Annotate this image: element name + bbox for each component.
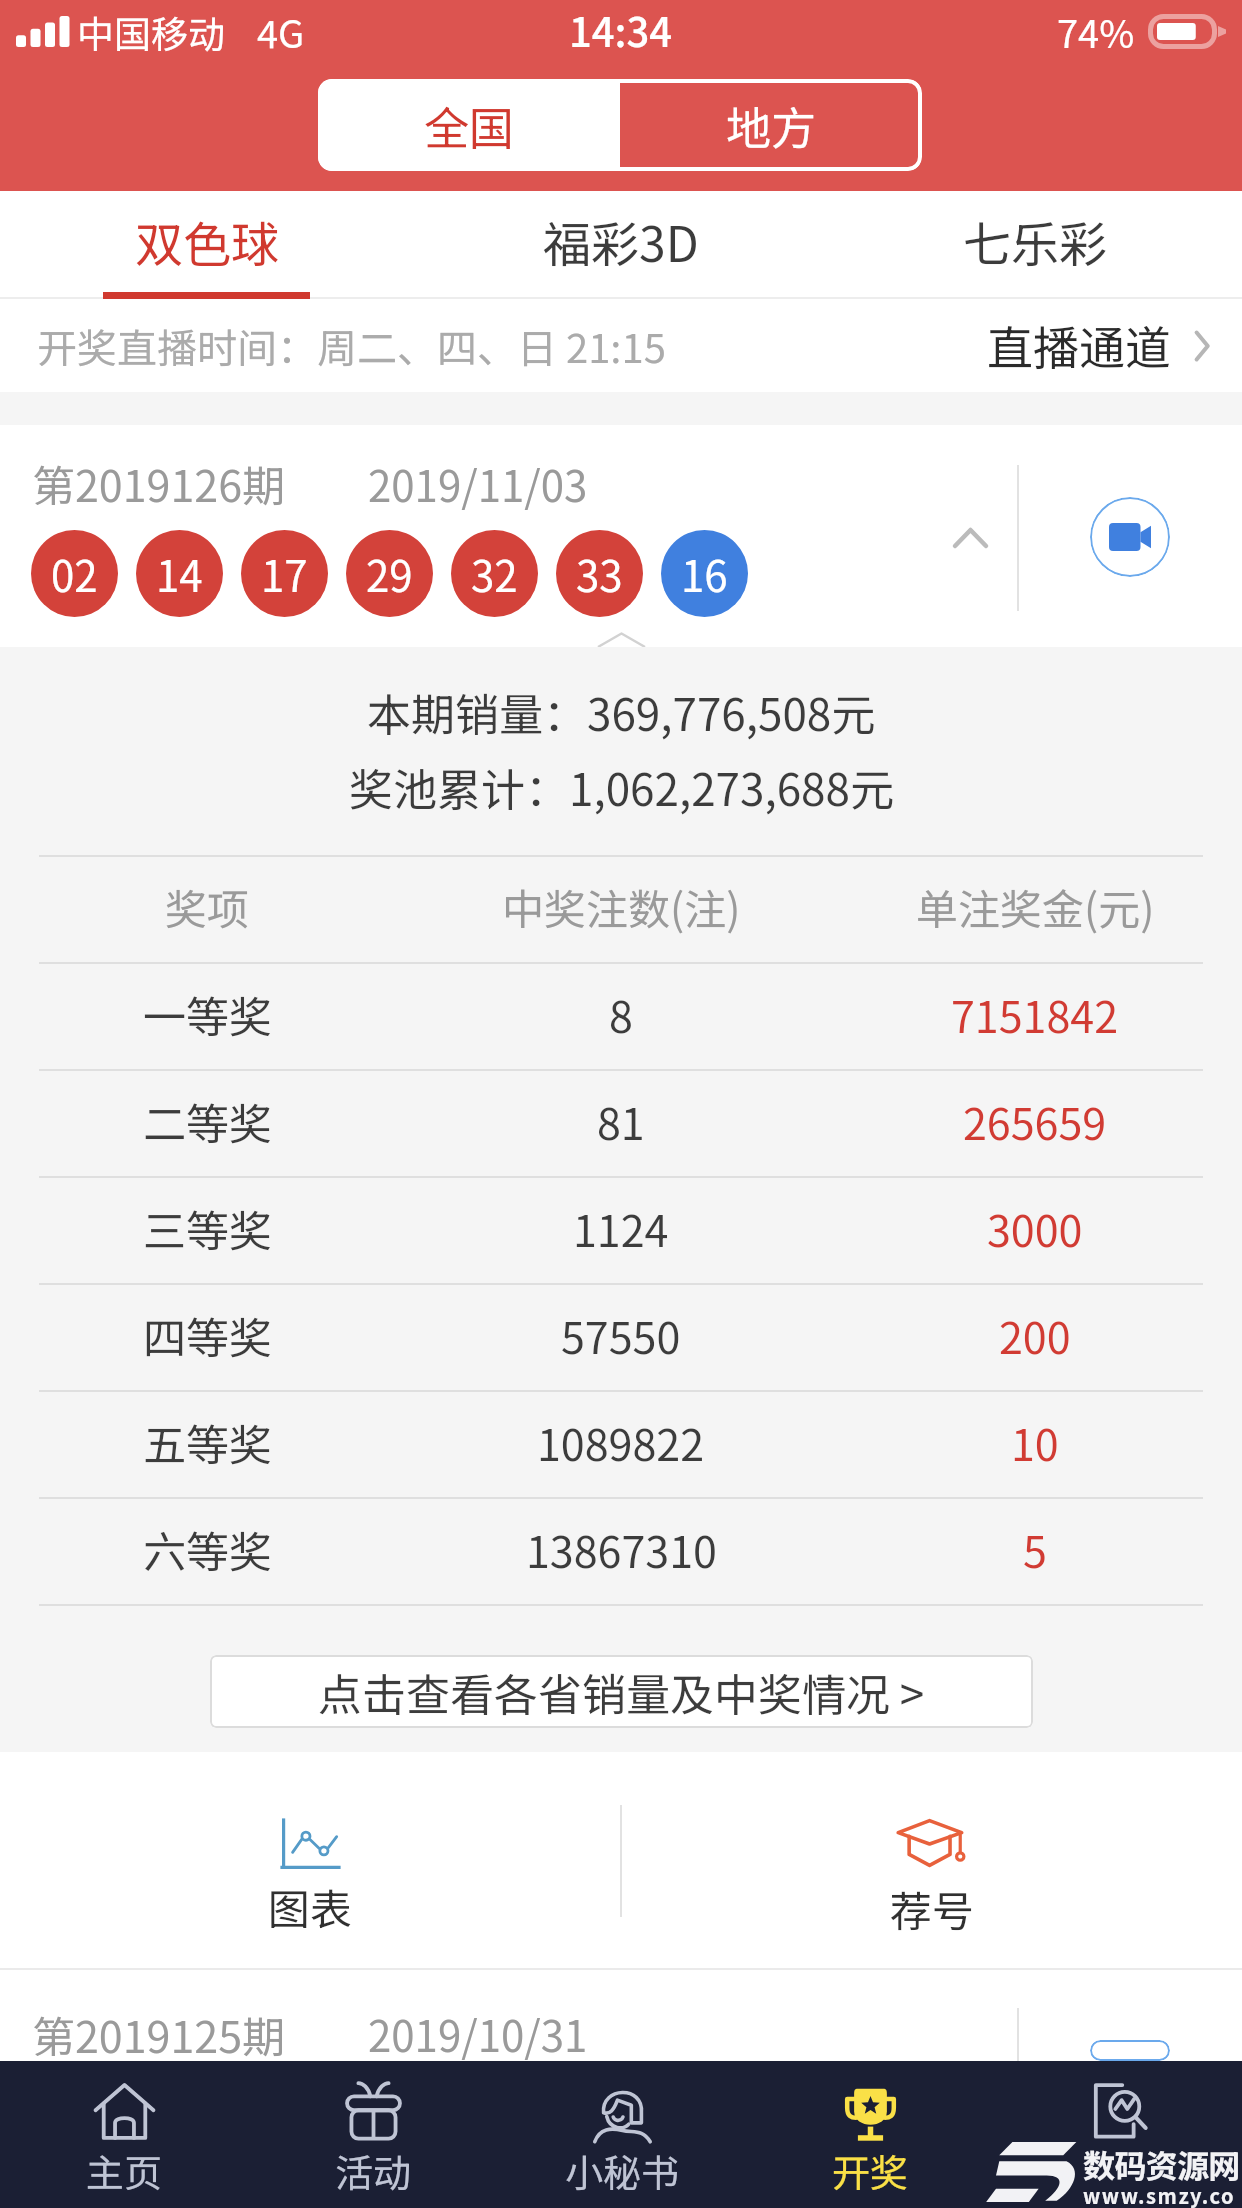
staticText: 第2019125期 — [32, 2003, 286, 2061]
staticText: 200 — [999, 1304, 1071, 1366]
staticText: 四等奖 — [143, 1304, 272, 1366]
button[interactable]: 活动 — [249, 2061, 498, 2208]
button[interactable]: 地方 — [620, 79, 922, 171]
staticText: 开奖 — [832, 2143, 909, 2198]
staticText: 14:34 — [569, 1, 673, 59]
staticText: 第2019126期 — [32, 452, 286, 514]
button[interactable]: 双色球 — [0, 191, 414, 299]
button[interactable]: 开奖 — [746, 2061, 994, 2208]
staticText: 74% — [1057, 4, 1135, 59]
button[interactable]: 小秘书 — [498, 2061, 746, 2208]
staticText: 32 — [471, 543, 518, 604]
staticText: 三等奖 — [143, 1197, 272, 1259]
staticText: 六等奖 — [143, 1518, 272, 1580]
staticText: 265659 — [963, 1090, 1107, 1152]
staticText: 点击查看各省销量及中奖情况 > — [318, 1660, 925, 1724]
staticText: 4G — [257, 4, 305, 59]
button[interactable]: Search — [994, 2061, 1242, 2208]
button[interactable]: 荐号 — [622, 1752, 1242, 1970]
button[interactable]: Collapse — [924, 492, 1016, 584]
staticText: 1089822 — [537, 1411, 705, 1473]
staticText: 全国 — [424, 93, 515, 158]
button[interactable]: 点击查看各省销量及中奖情况 > — [210, 1655, 1033, 1728]
staticText: 一等奖 — [143, 983, 272, 1045]
button[interactable]: 全国 — [318, 79, 620, 171]
staticText: 33 — [576, 543, 623, 604]
staticText: 奖池累计：1,062,273,688元 — [349, 755, 894, 818]
button[interactable]: 福彩3D — [414, 191, 828, 299]
staticText: 荐号 — [890, 1878, 975, 1939]
staticText: 活动 — [335, 2143, 412, 2198]
staticText: 直播通道 — [987, 312, 1171, 379]
staticText: 13867310 — [526, 1518, 717, 1580]
staticText: 主页 — [86, 2143, 163, 2198]
staticText: 17 — [261, 543, 308, 604]
staticText: 8 — [609, 983, 633, 1045]
staticText: 福彩3D — [543, 206, 699, 276]
button[interactable]: 图表 — [0, 1752, 620, 1970]
staticText: 中国移动 — [77, 5, 225, 59]
staticText: 1124 — [573, 1197, 669, 1259]
button[interactable]: 七乐彩 — [828, 191, 1242, 299]
staticText: 7151842 — [951, 983, 1119, 1045]
staticText: 中奖注数(注) — [502, 876, 741, 937]
staticText: 图表 — [268, 1876, 353, 1937]
staticText: 29 — [366, 543, 413, 604]
staticText: 14 — [156, 543, 203, 604]
staticText: 10 — [1011, 1411, 1059, 1473]
staticText: 57550 — [561, 1304, 681, 1366]
staticText: 2019/11/03 — [368, 453, 588, 514]
staticText: 02 — [51, 543, 98, 604]
staticText: 3000 — [987, 1197, 1083, 1259]
staticText: 七乐彩 — [963, 206, 1108, 276]
button[interactable]: Live video — [1090, 497, 1170, 577]
staticText: 数码资源网 — [1083, 2141, 1241, 2187]
staticText: 单注奖金(元) — [916, 876, 1155, 937]
staticText: 双色球 — [135, 206, 280, 276]
staticText: 地方 — [726, 93, 817, 158]
staticText: www.smzy.com — [1083, 2181, 1242, 2208]
staticText: 小秘书 — [565, 2143, 680, 2198]
button[interactable]: 开奖直播时间：周二、四、日 21:15 — [0, 299, 1242, 392]
staticText: 16 — [681, 543, 728, 604]
staticText: 81 — [597, 1090, 645, 1152]
staticText: 本期销量：369,776,508元 — [367, 680, 876, 744]
staticText: 奖项 — [165, 876, 250, 937]
staticText: 五等奖 — [143, 1411, 272, 1473]
button[interactable]: 主页 — [0, 2061, 249, 2208]
staticText: 5 — [1023, 1518, 1047, 1580]
staticText: 开奖直播时间：周二、四、日 21:15 — [37, 317, 666, 375]
staticText: 2019/10/31 — [368, 2003, 588, 2061]
staticText: 二等奖 — [143, 1090, 272, 1152]
